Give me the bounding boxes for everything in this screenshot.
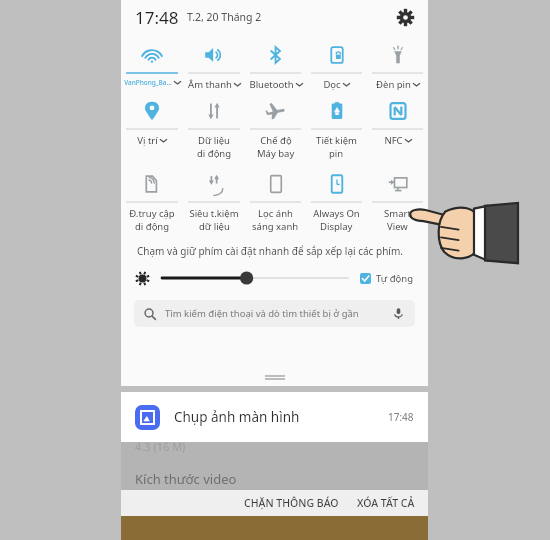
staticText: Máy bay (257, 147, 295, 160)
staticText: Tự động (376, 272, 414, 285)
button[interactable]: Smart (367, 165, 428, 238)
staticText: di động (197, 147, 232, 160)
staticText: 17:48 (135, 6, 179, 29)
staticText: View (387, 220, 408, 233)
button[interactable]: XÓA TẤT CẢ (348, 492, 424, 514)
button[interactable]: Đ.truy cập (121, 165, 183, 238)
button[interactable]: Settings (392, 4, 418, 30)
button[interactable]: Tìm kiếm điện thoại và dò tìm thiết bị ở… (134, 300, 415, 327)
button[interactable]: Âm thanh (183, 36, 245, 92)
button[interactable]: Dữ liệu (183, 92, 245, 165)
staticText: Display (320, 220, 353, 233)
staticText: Tiết kiệm (316, 134, 357, 147)
staticText: Chế độ (260, 134, 292, 147)
button[interactable]: Đèn pin (367, 36, 428, 92)
staticText: VanPhong_Ba... (124, 78, 172, 87)
staticText: Always On (313, 207, 360, 220)
staticText: sáng xanh (252, 220, 299, 233)
staticText: Siêu t.kiệm (189, 207, 239, 220)
button[interactable]: Bluetooth (245, 36, 306, 92)
button[interactable]: Tiết kiệm (306, 92, 367, 165)
staticText: Chụp ảnh màn hình (174, 408, 300, 426)
button[interactable]: CHẶN THÔNG BÁO (235, 492, 348, 514)
staticText: Lọc ánh (258, 207, 293, 220)
other: Voice search (392, 307, 405, 320)
button[interactable]: Always On (306, 165, 367, 238)
staticText: Âm thanh (188, 78, 232, 91)
staticText: Dọc (323, 78, 341, 91)
button[interactable]: Brightness (162, 268, 348, 288)
staticText: di động (135, 220, 170, 233)
button[interactable]: Vị trí (121, 92, 183, 165)
button[interactable]: NFC (367, 92, 428, 165)
staticText: Vị trí (137, 134, 158, 147)
button[interactable]: Siêu t.kiệm (183, 165, 245, 238)
staticText: dữ liệu (199, 220, 230, 233)
staticText: 4.3 (16 M) (135, 439, 186, 454)
staticText: Đèn pin (376, 78, 411, 91)
staticText: Tìm kiếm điện thoại và dò tìm thiết bị ở… (165, 307, 359, 320)
button[interactable]: Lọc ánh (245, 165, 306, 238)
staticText: T.2, 20 Tháng 2 (187, 10, 262, 24)
staticText: XÓA TẤT CẢ (357, 496, 415, 510)
staticText: Kích thước video (135, 470, 237, 488)
staticText: Dữ liệu (198, 134, 230, 147)
staticText: pin (329, 147, 344, 160)
button[interactable]: Dọc (306, 36, 367, 92)
button[interactable]: Chụp ảnh màn hình (121, 392, 428, 442)
staticText: NFC (384, 134, 403, 147)
staticText: Đ.truy cập (129, 207, 175, 220)
staticText: Chạm và giữ phím cài đặt nhanh để sắp xế… (137, 244, 403, 258)
staticText: 17:48 (388, 410, 414, 424)
staticText: Smart (384, 207, 411, 220)
staticText: CHẶN THÔNG BÁO (244, 496, 339, 510)
button[interactable]: Chế độ (245, 92, 306, 165)
staticText: Bluetooth (249, 78, 294, 91)
button[interactable]: VanPhong_Ba... (121, 36, 183, 92)
button[interactable]: Tự động (360, 272, 414, 285)
